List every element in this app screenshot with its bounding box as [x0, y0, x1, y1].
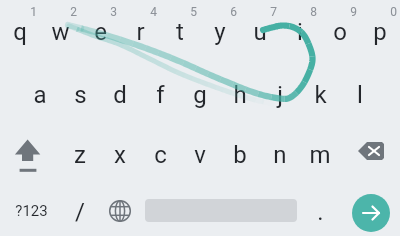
button[interactable]: p [360, 10, 400, 54]
button[interactable]: Shift [9, 134, 49, 178]
staticText: d [113, 81, 127, 109]
staticText: c [154, 141, 167, 169]
staticText: h [233, 81, 247, 109]
button[interactable]: 7 [262, 4, 284, 20]
button[interactable]: 8 [302, 4, 324, 20]
staticText: 3 [110, 5, 117, 19]
button[interactable]: j [260, 73, 300, 117]
staticText: x [114, 141, 126, 169]
staticText: u [253, 18, 267, 46]
staticText: a [33, 81, 47, 109]
button[interactable]: Change keyboard language [106, 197, 134, 225]
staticText: i [297, 18, 303, 46]
button[interactable]: s [60, 73, 100, 117]
staticText: 2 [70, 5, 77, 19]
button[interactable]: e [80, 10, 120, 54]
button[interactable]: x [100, 133, 140, 177]
button[interactable]: b [220, 133, 260, 177]
button[interactable]: k [300, 73, 340, 117]
staticText: p [373, 18, 387, 46]
staticText: 1 [30, 5, 37, 19]
button[interactable]: 9 [342, 4, 364, 20]
staticText: e [94, 18, 107, 46]
staticText: o [333, 18, 347, 46]
staticText: y [214, 18, 226, 46]
button[interactable]: o [320, 10, 360, 54]
button[interactable]: r [120, 10, 160, 54]
button[interactable]: d [100, 73, 140, 117]
staticText: m [309, 141, 331, 169]
button[interactable]: a [20, 73, 60, 117]
button[interactable]: f [140, 73, 180, 117]
button[interactable]: Enter [352, 194, 390, 232]
staticText: q [13, 18, 27, 46]
button[interactable]: y [200, 10, 240, 54]
staticText: 5 [190, 5, 197, 19]
staticText: / [75, 198, 85, 226]
staticText: 4 [150, 5, 157, 19]
button[interactable]: q [0, 10, 40, 54]
staticText: s [74, 81, 87, 109]
button[interactable]: l [340, 73, 380, 117]
button[interactable]: 5 [182, 4, 204, 20]
staticText: 0 [390, 5, 397, 19]
staticText: t [176, 18, 184, 46]
button[interactable]: c [140, 133, 180, 177]
button[interactable]: u [240, 10, 280, 54]
button[interactable]: g [180, 73, 220, 117]
staticText: l [357, 81, 363, 109]
button[interactable]: i [280, 10, 320, 54]
button[interactable]: 3 [102, 4, 124, 20]
button[interactable]: w [40, 10, 80, 54]
button[interactable]: / [64, 195, 96, 229]
button[interactable]: m [300, 133, 340, 177]
staticText: j [277, 81, 283, 109]
button[interactable]: 1 [22, 4, 44, 20]
staticText: 7 [270, 5, 277, 19]
staticText: v [194, 141, 206, 169]
button[interactable]: z [60, 133, 100, 177]
button[interactable]: 6 [222, 4, 244, 20]
button[interactable]: n [260, 133, 300, 177]
button[interactable]: 4 [142, 4, 164, 20]
button[interactable]: ?123 [7, 194, 55, 228]
staticText: 8 [310, 5, 317, 19]
staticText: r [136, 18, 145, 46]
button[interactable]: 2 [62, 4, 84, 20]
button[interactable]: t [160, 10, 200, 54]
staticText: k [314, 81, 327, 109]
staticText: w [51, 18, 70, 46]
staticText: . [317, 198, 324, 226]
button[interactable]: 0 [382, 4, 400, 20]
staticText: n [273, 141, 287, 169]
staticText: ?123 [15, 202, 48, 220]
button[interactable]: Backspace [354, 140, 390, 164]
staticText: g [193, 81, 207, 109]
staticText: b [233, 141, 247, 169]
button[interactable]: h [220, 73, 260, 117]
button[interactable]: v [180, 133, 220, 177]
staticText: f [156, 81, 165, 109]
button[interactable]: . [304, 195, 336, 229]
staticText: z [74, 141, 86, 169]
staticText: 9 [350, 5, 357, 19]
staticText: 6 [230, 5, 237, 19]
